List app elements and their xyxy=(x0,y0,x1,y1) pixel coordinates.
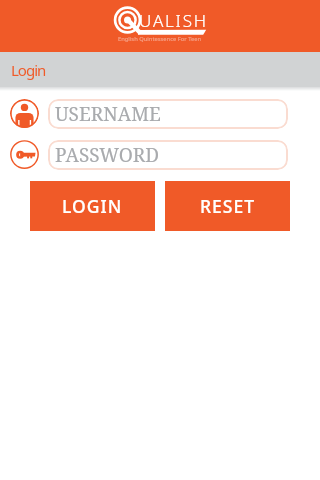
staticText: USERNAME xyxy=(55,101,161,127)
button[interactable]: RESET xyxy=(165,181,290,231)
staticText: Login xyxy=(11,60,46,80)
staticText: PASSWORD xyxy=(55,142,160,168)
button[interactable]: PASSWORD xyxy=(48,140,288,170)
button[interactable]: Username xyxy=(10,99,39,128)
staticText: UALISH xyxy=(139,9,208,32)
button[interactable]: LOGIN xyxy=(30,181,155,231)
staticText: LOGIN xyxy=(62,194,123,218)
button[interactable]: Login xyxy=(0,52,320,87)
button[interactable]: Password xyxy=(10,140,39,169)
staticText: RESET xyxy=(200,194,256,218)
button[interactable]: USERNAME xyxy=(48,99,288,129)
staticText: English Quintessence For Teen xyxy=(118,35,202,43)
